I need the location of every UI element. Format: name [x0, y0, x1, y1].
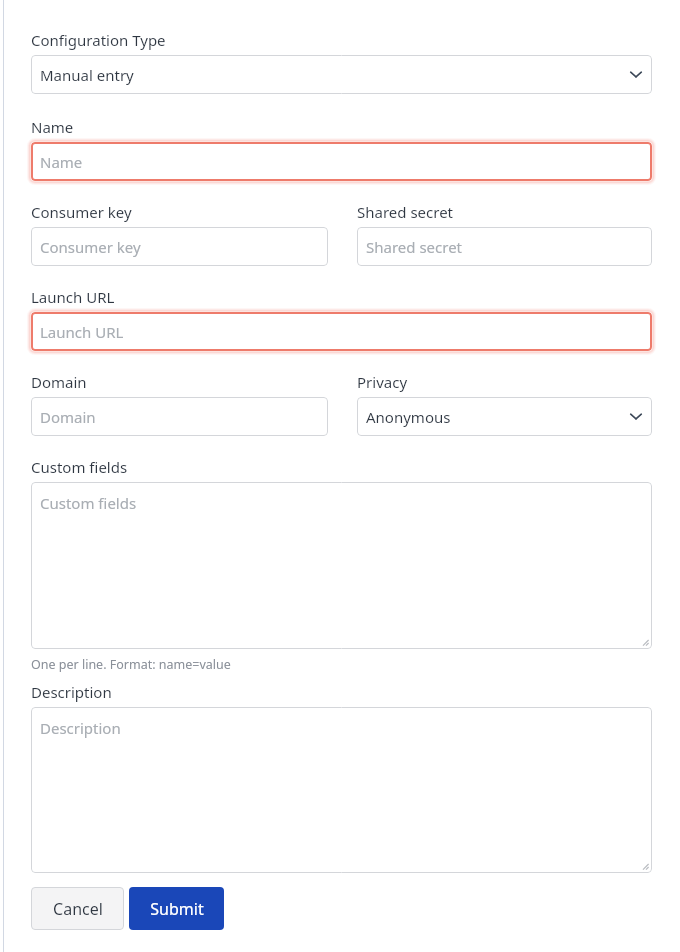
button[interactable]: Description: [31, 707, 652, 873]
button[interactable]: Domain: [31, 397, 328, 436]
staticText: Name: [31, 117, 74, 137]
button[interactable]: Name: [31, 142, 652, 181]
staticText: Domain: [31, 372, 87, 392]
staticText: Configuration Type: [31, 30, 166, 50]
button[interactable]: Custom fields: [31, 482, 652, 649]
button[interactable]: Consumer key: [31, 227, 328, 266]
button[interactable]: Submit: [129, 887, 224, 930]
staticText: Privacy: [357, 372, 408, 392]
staticText: Anonymous: [366, 407, 451, 427]
staticText: Consumer key: [31, 202, 132, 222]
button[interactable]: Cancel: [31, 887, 124, 930]
staticText: Manual entry: [40, 65, 134, 85]
staticText: Custom fields: [31, 457, 128, 477]
staticText: One per line. Format: name=value: [31, 656, 231, 673]
button[interactable]: Open Manual entry dropdown: [31, 55, 652, 94]
staticText: Submit: [150, 898, 204, 920]
staticText: Consumer key: [40, 237, 141, 257]
staticText: Cancel: [53, 898, 103, 920]
button[interactable]: Shared secret: [357, 227, 652, 266]
staticText: Launch URL: [40, 322, 124, 342]
staticText: Launch URL: [31, 287, 115, 307]
button[interactable]: Launch URL: [31, 312, 652, 351]
button[interactable]: Open Anonymous dropdown: [357, 397, 652, 436]
staticText: Description: [31, 682, 112, 702]
staticText: Description: [40, 718, 121, 738]
staticText: Name: [40, 152, 83, 172]
staticText: Shared secret: [366, 237, 463, 257]
staticText: Custom fields: [40, 493, 137, 513]
staticText: Domain: [40, 407, 96, 427]
staticText: Shared secret: [357, 202, 454, 222]
